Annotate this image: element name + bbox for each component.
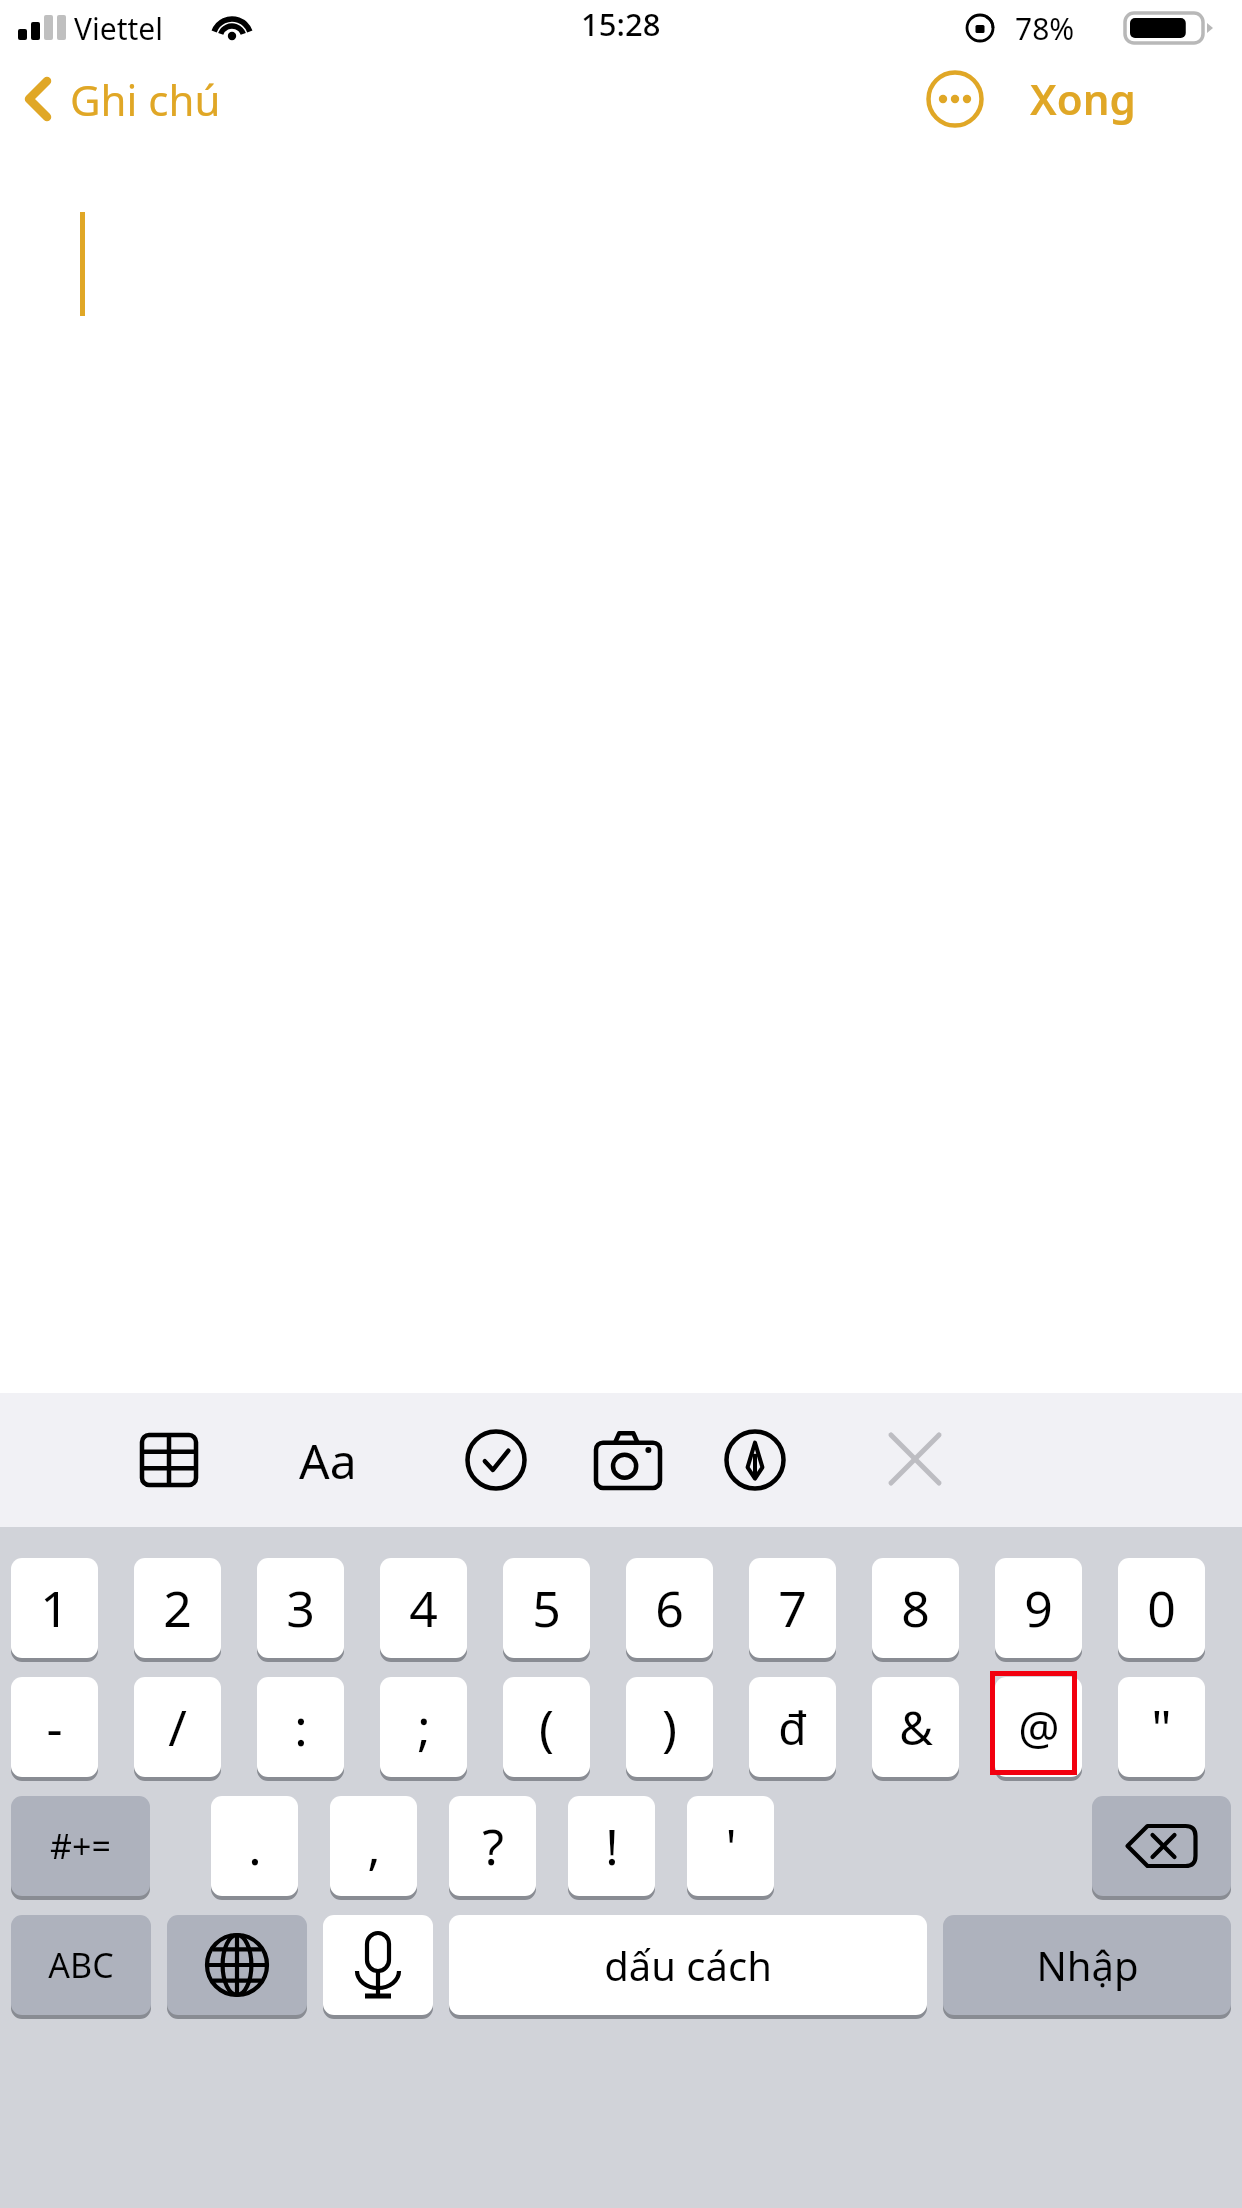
button[interactable]: @ xyxy=(995,1677,1082,1777)
staticText: @ xyxy=(1018,1696,1060,1759)
button[interactable]: ! xyxy=(568,1796,655,1896)
button[interactable]: ( xyxy=(503,1677,590,1777)
staticText: 3 xyxy=(286,1574,315,1642)
button[interactable]: Ghi chú xyxy=(20,66,221,132)
button[interactable]: #+= xyxy=(11,1796,150,1896)
staticText: 78% xyxy=(1015,8,1075,49)
button[interactable]: . xyxy=(211,1796,298,1896)
button[interactable]: 0 xyxy=(1118,1558,1205,1658)
button[interactable]: Markup xyxy=(706,1411,804,1509)
staticText: 8 xyxy=(901,1574,930,1642)
button[interactable]: 6 xyxy=(626,1558,713,1658)
button[interactable]: 8 xyxy=(872,1558,959,1658)
staticText: ! xyxy=(605,1812,619,1880)
button[interactable]: Xong xyxy=(1030,64,1136,132)
button[interactable]: 4 xyxy=(380,1558,467,1658)
staticText: Ghi chú xyxy=(70,71,221,128)
button[interactable]: ; xyxy=(380,1677,467,1777)
staticText: Aa xyxy=(299,1428,357,1493)
button[interactable]: , xyxy=(330,1796,417,1896)
button[interactable]: " xyxy=(1118,1677,1205,1777)
button[interactable]: Checklist xyxy=(447,1411,545,1509)
button[interactable]: Delete xyxy=(1092,1796,1231,1896)
button[interactable]: Dictate xyxy=(323,1915,433,2015)
staticText: 0 xyxy=(1147,1574,1176,1642)
staticText: dấu cách xyxy=(604,1938,772,1992)
staticText: #+= xyxy=(50,1823,111,1869)
button[interactable]: 7 xyxy=(749,1558,836,1658)
staticText: ? xyxy=(482,1812,504,1880)
button[interactable]: Camera xyxy=(576,1411,680,1509)
staticText: : xyxy=(294,1693,308,1761)
staticText: ; xyxy=(417,1693,431,1761)
button[interactable]: 3 xyxy=(257,1558,344,1658)
staticText: " xyxy=(1151,1693,1172,1761)
button[interactable]: / xyxy=(134,1677,221,1777)
staticText: ) xyxy=(662,1693,677,1761)
staticText: ABC xyxy=(48,1942,114,1988)
staticText: 9 xyxy=(1024,1574,1053,1642)
staticText: đ xyxy=(778,1696,807,1759)
button[interactable]: ) xyxy=(626,1677,713,1777)
button[interactable]: dấu cách xyxy=(449,1915,927,2015)
button[interactable]: ' xyxy=(687,1796,774,1896)
staticText: ( xyxy=(539,1693,554,1761)
button[interactable]: Nhập xyxy=(943,1915,1231,2015)
button[interactable]: : xyxy=(257,1677,344,1777)
staticText: Nhập xyxy=(1036,1938,1139,1992)
button[interactable]: ? xyxy=(449,1796,536,1896)
button[interactable]: - xyxy=(11,1677,98,1777)
staticText: 7 xyxy=(778,1574,807,1642)
staticText: . xyxy=(248,1812,262,1880)
button[interactable]: 1 xyxy=(11,1558,98,1658)
button[interactable]: 5 xyxy=(503,1558,590,1658)
staticText: , xyxy=(367,1812,381,1880)
staticText: 4 xyxy=(409,1574,438,1642)
button[interactable]: ABC xyxy=(11,1915,151,2015)
staticText: 1 xyxy=(40,1574,69,1642)
button[interactable]: More options xyxy=(926,70,984,128)
button[interactable]: & xyxy=(872,1677,959,1777)
staticText: 2 xyxy=(163,1574,192,1642)
staticText: Xong xyxy=(1030,70,1136,127)
button[interactable]: 2 xyxy=(134,1558,221,1658)
staticText: - xyxy=(46,1693,63,1761)
staticText: Viettel xyxy=(74,8,163,49)
staticText: 6 xyxy=(655,1574,684,1642)
button[interactable]: 9 xyxy=(995,1558,1082,1658)
button[interactable]: Change language xyxy=(167,1915,307,2015)
button[interactable]: Aa xyxy=(280,1423,376,1497)
button[interactable]: đ xyxy=(749,1677,836,1777)
staticText: & xyxy=(899,1696,933,1759)
button[interactable]: Table xyxy=(122,1413,216,1507)
staticText: / xyxy=(168,1693,187,1761)
staticText: 5 xyxy=(532,1574,561,1642)
button[interactable]: Close keyboard xyxy=(867,1411,963,1507)
staticText: 15:28 xyxy=(581,3,661,45)
staticText: ' xyxy=(725,1812,737,1880)
